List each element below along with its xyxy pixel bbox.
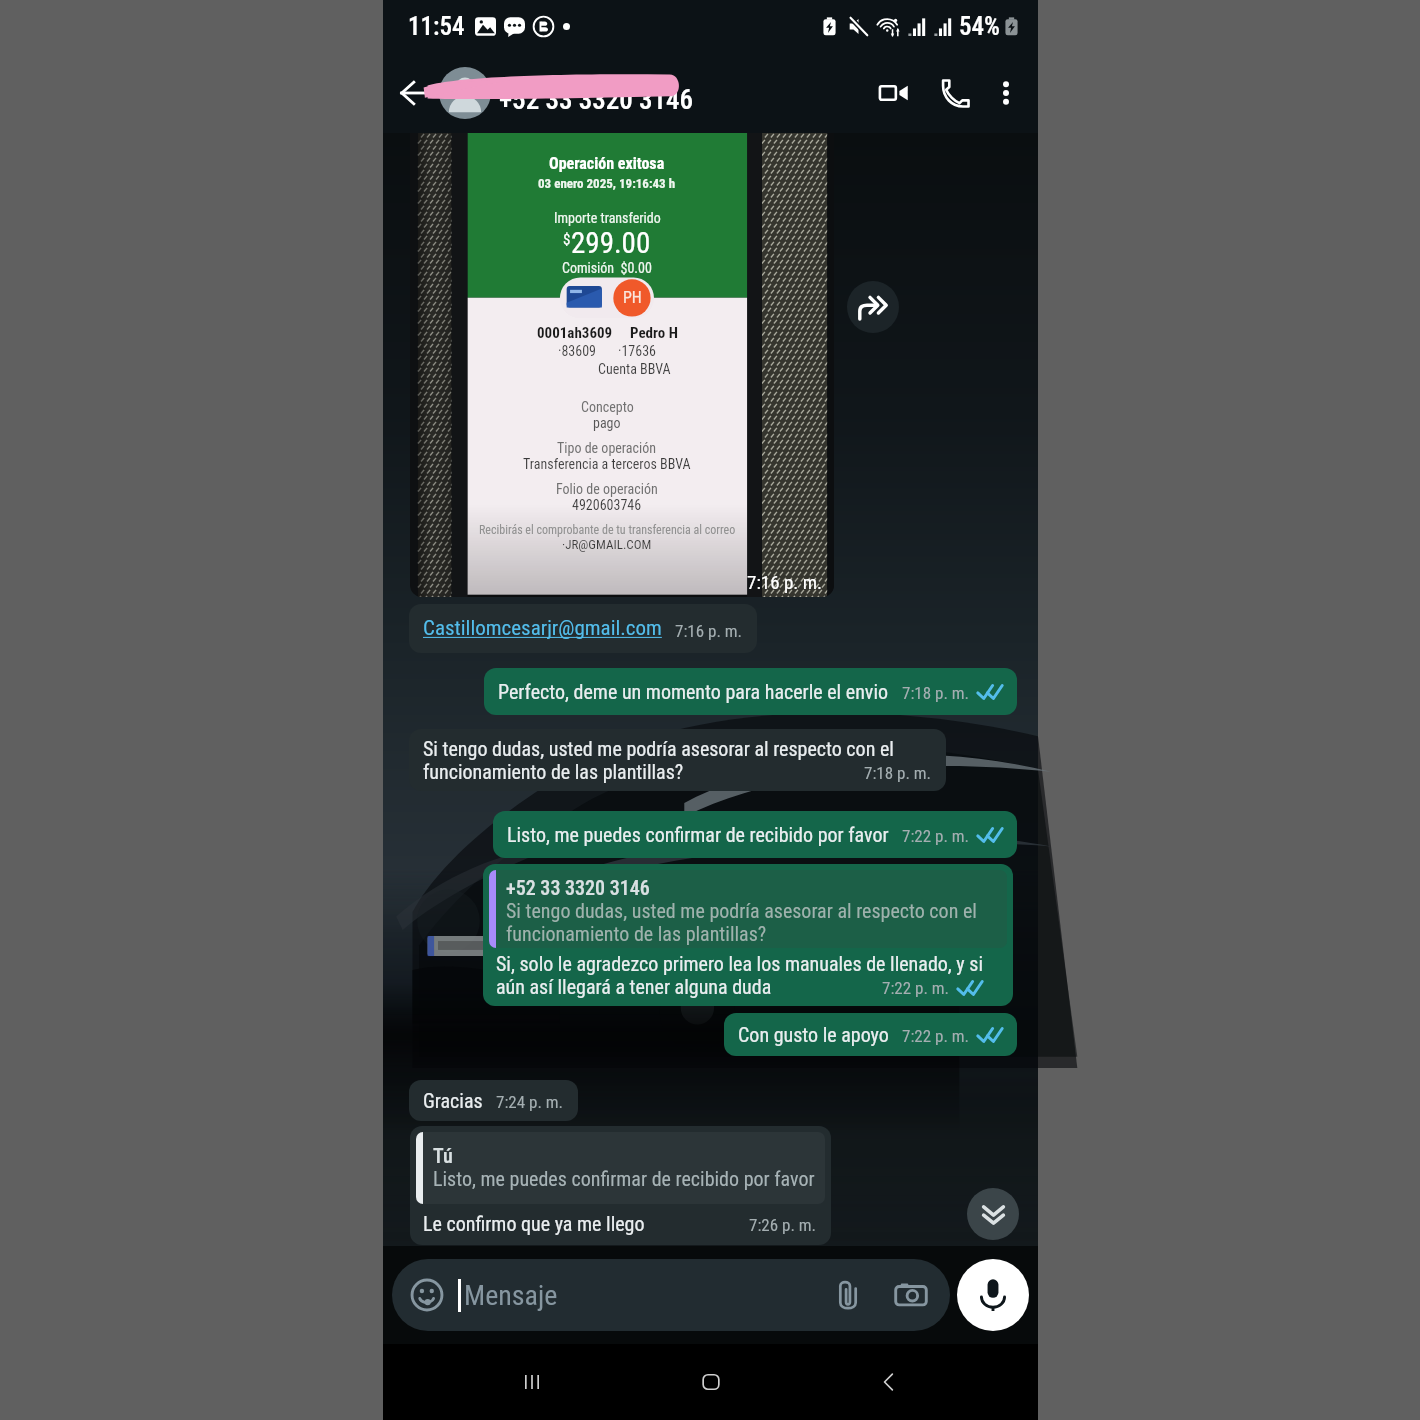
staticText: Perfecto, deme un momento para hacerle e…: [498, 680, 889, 703]
staticText: Comisión $0.00: [562, 260, 652, 276]
button[interactable]: Si tengo dudas, usted me podría asesorar…: [409, 729, 946, 791]
button[interactable]: Scroll to bottom: [967, 1188, 1019, 1240]
staticText: PH: [623, 288, 642, 307]
button[interactable]: Home: [681, 1352, 741, 1412]
staticText: Tipo de operación: [557, 440, 657, 456]
staticText: 7:16 p. m.: [675, 621, 743, 641]
staticText: +52 33 3320 3146: [506, 876, 650, 899]
button[interactable]: Mensaje: [392, 1259, 950, 1331]
button[interactable]: Voice message: [957, 1259, 1029, 1331]
staticText: 299.00: [571, 226, 651, 260]
staticText: Listo, me puedes confirmar de recibido p…: [433, 1167, 815, 1190]
staticText: Con gusto le apoyo: [738, 1023, 889, 1046]
staticText: Concepto: [581, 399, 634, 415]
staticText: Gracias: [423, 1089, 483, 1112]
button[interactable]: +52 33 3320 3146: [483, 864, 1013, 1006]
staticText: Operación exitosa: [549, 154, 665, 173]
staticText: 4920603746: [572, 497, 642, 513]
button[interactable]: Con gusto le apoyo: [724, 1013, 1017, 1056]
button[interactable]: Castillomcesarjr@gmail.com: [409, 604, 757, 653]
staticText: Tú: [433, 1144, 453, 1167]
staticText: Transferencia a terceros BBVA: [523, 456, 691, 472]
staticText: 7:18 p. m.: [902, 683, 970, 703]
staticText: pago: [593, 415, 621, 431]
staticText: 7:22 p. m.: [902, 1026, 970, 1046]
button[interactable]: Listo, me puedes confirmar de recibido p…: [493, 811, 1017, 858]
staticText: Cuenta BBVA: [598, 361, 671, 377]
staticText: 54%: [959, 12, 1000, 41]
staticText: Listo, me puedes confirmar de recibido p…: [507, 823, 889, 846]
staticText: funcionamiento de las plantillas?: [423, 760, 684, 783]
staticText: ·JR@GMAIL.COM: [562, 537, 652, 552]
staticText: Pedro H: [630, 324, 678, 342]
staticText: ·17636: [618, 343, 656, 359]
staticText: 7:16 p. m.: [747, 571, 822, 593]
staticText: Castillomcesarjr@gmail.com: [423, 616, 662, 641]
staticText: aún así llegará a tener alguna duda: [496, 975, 772, 998]
staticText: 7:26 p. m.: [749, 1215, 817, 1235]
staticText: 7:22 p. m.: [902, 826, 970, 846]
staticText: +52 33 3320 3146: [499, 84, 694, 116]
staticText: 0001ah3609: [537, 324, 613, 342]
button[interactable]: Gracias: [409, 1080, 578, 1121]
staticText: 7:18 p. m.: [864, 763, 932, 783]
staticText: funcionamiento de las plantillas?: [506, 922, 767, 945]
button[interactable]: Back: [859, 1352, 919, 1412]
staticText: Si, solo le agradezco primero lea los ma…: [496, 952, 983, 975]
button[interactable]: Tú: [410, 1126, 831, 1245]
staticText: 11:54: [408, 12, 465, 41]
button[interactable]: Video call: [870, 70, 916, 116]
staticText: 7:24 p. m.: [496, 1092, 564, 1112]
staticText: 7:22 p. m.: [882, 978, 950, 998]
staticText: 03 enero 2025, 19:16:43 h: [538, 176, 676, 191]
staticText: Recibirás el comprobante de tu transfere…: [479, 523, 736, 537]
staticText: Si tengo dudas, usted me podría asesorar…: [506, 899, 977, 922]
button[interactable]: Contact photo: [439, 67, 491, 119]
button[interactable]: Recent apps: [502, 1352, 562, 1412]
button[interactable]: Forward: [847, 281, 899, 333]
button[interactable]: Perfecto, deme un momento para hacerle e…: [484, 668, 1017, 715]
button[interactable]: Photo message: [410, 133, 834, 597]
button[interactable]: More options: [986, 73, 1026, 113]
staticText: Si tengo dudas, usted me podría asesorar…: [423, 737, 894, 760]
staticText: $: [563, 230, 571, 248]
button[interactable]: Voice call: [932, 70, 978, 116]
button[interactable]: Back: [393, 71, 437, 115]
staticText: Folio de operación: [556, 481, 658, 497]
staticText: Mensaje: [464, 1279, 558, 1312]
staticText: ·83609: [558, 343, 596, 359]
staticText: Le confirmo que ya me llego: [423, 1212, 645, 1235]
staticText: Importe transferido: [554, 210, 661, 226]
